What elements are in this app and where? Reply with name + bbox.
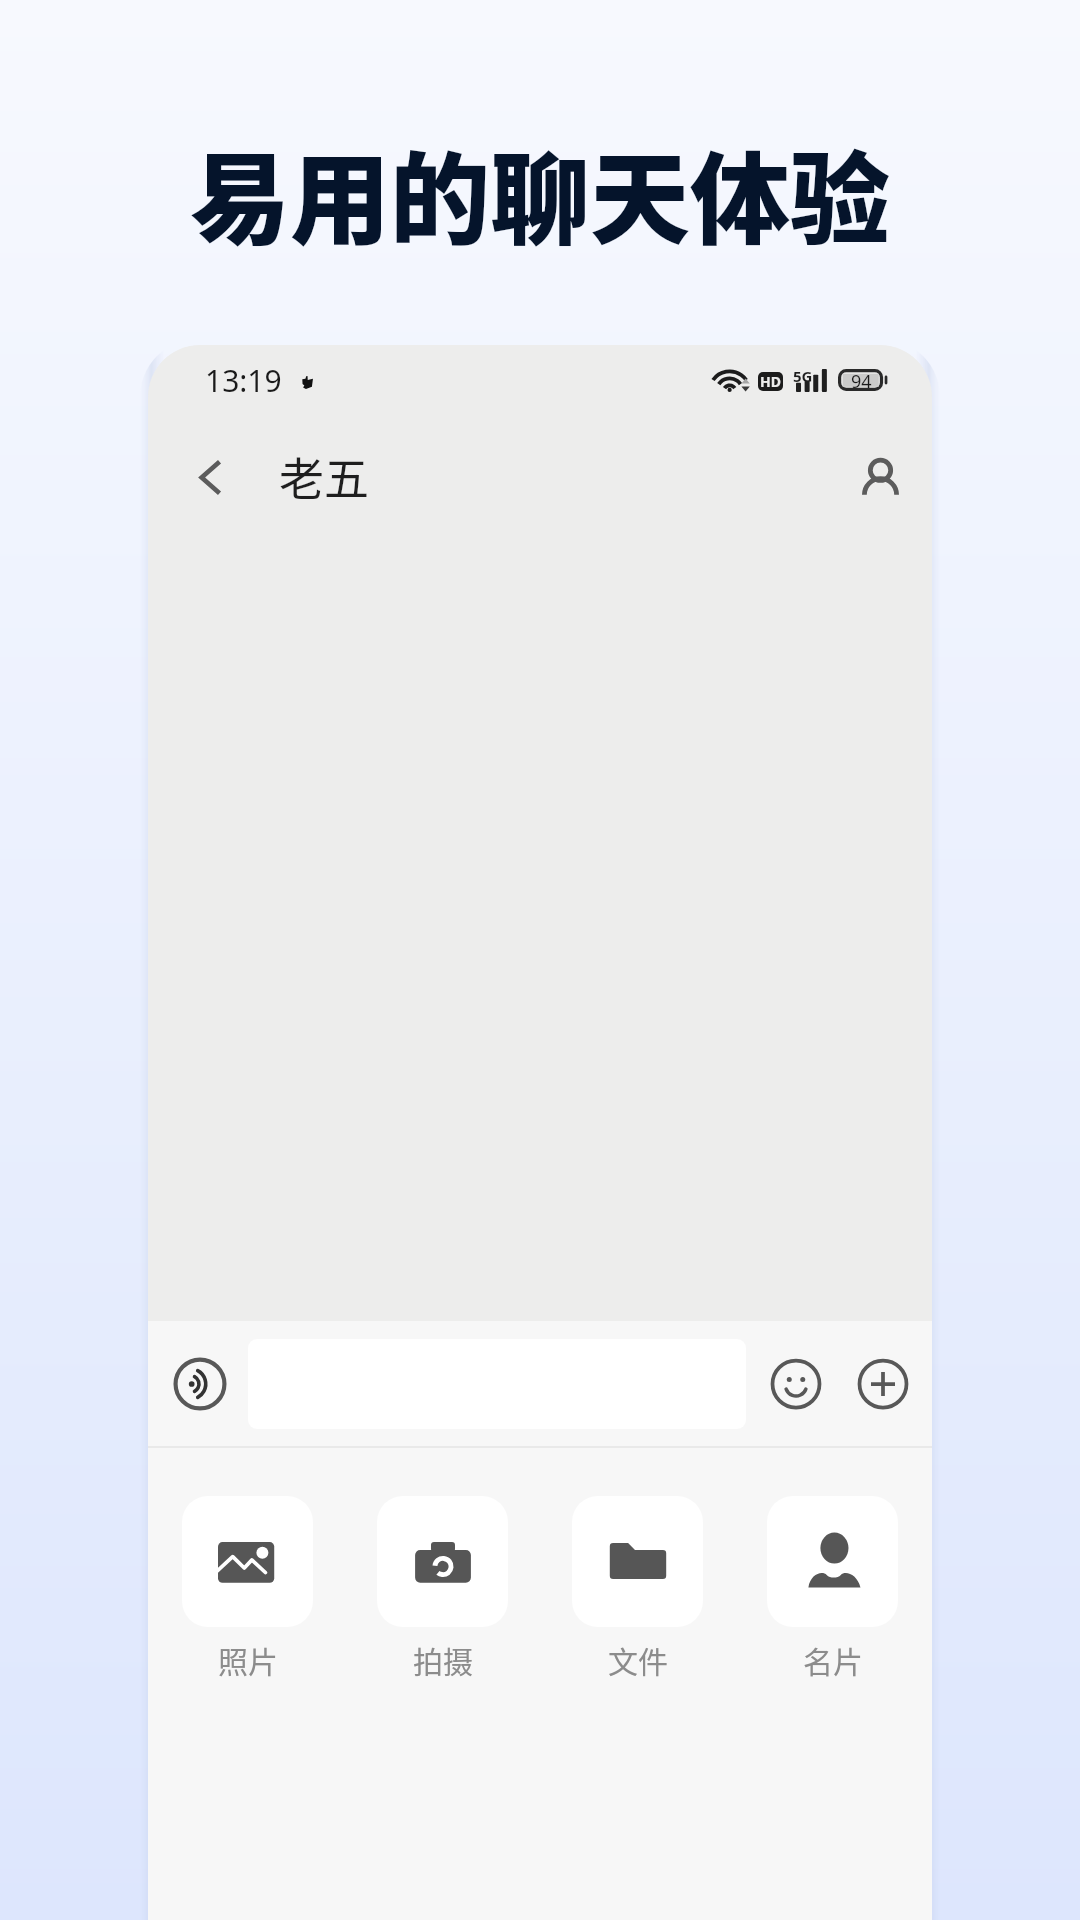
- staticText: 名片: [803, 1638, 863, 1681]
- staticText: 易用的聊天体验: [190, 120, 890, 265]
- button[interactable]: Voice message: [170, 1354, 230, 1414]
- staticText: 照片: [218, 1638, 278, 1681]
- button[interactable]: 名片: [767, 1496, 898, 1681]
- staticText: HD: [760, 372, 781, 391]
- button[interactable]: 文件: [572, 1496, 703, 1681]
- button[interactable]: 照片: [182, 1496, 313, 1681]
- staticText: 拍摄: [413, 1638, 473, 1681]
- staticText: 94: [851, 369, 872, 391]
- button[interactable]: Contact profile: [836, 434, 924, 522]
- button[interactable]: Emoji: [766, 1354, 826, 1414]
- staticText: 5G: [793, 366, 813, 386]
- button[interactable]: 拍摄: [377, 1496, 508, 1681]
- button[interactable]: Back: [166, 434, 252, 520]
- button[interactable]: More options: [853, 1354, 913, 1414]
- staticText: 老五: [279, 444, 370, 509]
- staticText: 13:19: [205, 360, 282, 401]
- staticText: 文件: [608, 1638, 668, 1681]
